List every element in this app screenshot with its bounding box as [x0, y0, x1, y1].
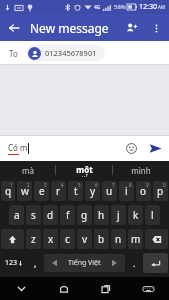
staticText: một — [76, 164, 93, 175]
staticText: f — [66, 208, 70, 222]
staticText: 0 — [163, 182, 166, 188]
button[interactable]: l — [145, 205, 160, 225]
button[interactable]: a — [9, 205, 24, 225]
button[interactable]: Add people — [119, 15, 145, 41]
button[interactable]: u — [102, 181, 117, 201]
button[interactable]: Hide keyboard — [0, 277, 43, 300]
button[interactable]: một — [56, 161, 112, 179]
button[interactable]: Back — [0, 14, 27, 41]
staticText: n — [115, 232, 122, 246]
staticText: l — [151, 208, 154, 222]
staticText: 58% — [114, 3, 126, 11]
staticText: x — [48, 232, 54, 246]
staticText: 5 — [78, 182, 81, 188]
button[interactable]: b — [94, 229, 109, 249]
staticText: 123 — [5, 258, 18, 268]
button[interactable]: . — [127, 251, 141, 275]
staticText: b — [98, 232, 105, 246]
button[interactable]: Recents — [85, 277, 127, 300]
button[interactable]: h — [94, 205, 109, 225]
staticText: , — [34, 257, 37, 269]
staticText: 1 — [10, 182, 13, 188]
button[interactable]: t — [68, 181, 83, 201]
staticText: 4 — [61, 182, 64, 188]
staticText: g — [81, 208, 88, 222]
button[interactable]: mà — [0, 161, 55, 179]
staticText: z — [31, 232, 36, 246]
button[interactable]: m — [128, 229, 143, 249]
staticText: mình — [131, 165, 151, 176]
staticText: AM — [158, 4, 165, 10]
button[interactable]: i — [119, 181, 134, 201]
staticText: w — [21, 184, 29, 198]
staticText: 3 — [44, 182, 47, 188]
button[interactable]: Tiếng Việt — [44, 254, 125, 272]
staticText: h — [98, 208, 105, 222]
button[interactable]: Home — [43, 277, 85, 300]
staticText: Tiếng Việt — [68, 258, 101, 268]
button[interactable]: j — [111, 205, 126, 225]
button[interactable]: n — [111, 229, 126, 249]
button[interactable]: z — [26, 229, 41, 249]
button[interactable]: Emoji — [122, 139, 140, 157]
button[interactable]: f — [60, 205, 75, 225]
button[interactable]: Backspace — [145, 229, 168, 249]
button[interactable]: s — [26, 205, 41, 225]
staticText: k — [133, 208, 139, 222]
staticText: a — [14, 208, 20, 222]
button[interactable]: e — [34, 181, 49, 201]
staticText: i — [125, 184, 128, 198]
staticText: 8 — [129, 182, 132, 188]
staticText: 012345678901 — [45, 48, 97, 58]
staticText: 12:30 — [139, 2, 157, 12]
staticText: v — [82, 232, 88, 246]
staticText: r — [56, 184, 61, 198]
staticText: To — [9, 48, 18, 59]
staticText: c — [65, 232, 70, 246]
button[interactable]: p — [153, 181, 168, 201]
button[interactable]: , — [28, 251, 42, 275]
button[interactable]: Switch keyboard — [127, 277, 169, 300]
staticText: 4G — [94, 4, 101, 11]
button[interactable]: x — [43, 229, 58, 249]
button[interactable]: mình — [113, 161, 169, 179]
staticText: 6 — [95, 182, 98, 188]
staticText: p — [157, 184, 164, 198]
button[interactable]: y — [85, 181, 100, 201]
button[interactable]: 012345678901 — [26, 45, 105, 61]
staticText: y — [90, 184, 96, 198]
staticText: 2 — [27, 182, 30, 188]
button[interactable]: w — [17, 181, 32, 201]
staticText: d — [47, 208, 54, 222]
button[interactable]: More options — [145, 17, 167, 39]
button[interactable]: o — [136, 181, 151, 201]
staticText: 9 — [146, 182, 149, 188]
staticText: o — [140, 184, 147, 198]
button[interactable]: Enter — [143, 253, 168, 273]
staticText: e — [39, 184, 45, 198]
button[interactable]: q — [1, 181, 15, 201]
button[interactable]: c — [60, 229, 75, 249]
staticText: 7 — [112, 182, 115, 188]
button[interactable]: k — [128, 205, 143, 225]
staticText: m — [131, 232, 141, 246]
staticText: s — [31, 208, 36, 222]
button[interactable]: v — [77, 229, 92, 249]
button[interactable]: Shift — [1, 229, 24, 249]
staticText: u — [106, 184, 113, 198]
button[interactable]: Send — [145, 138, 165, 158]
button[interactable]: d — [43, 205, 58, 225]
staticText: j — [117, 208, 120, 222]
staticText: t — [74, 184, 78, 198]
button[interactable]: g — [77, 205, 92, 225]
staticText: . — [133, 257, 136, 269]
staticText: mà — [22, 165, 34, 176]
staticText: q — [5, 184, 12, 198]
staticText: Có m — [8, 142, 28, 153]
staticText: New message — [30, 20, 109, 36]
button[interactable]: 123 — [1, 251, 26, 275]
button[interactable]: r — [51, 181, 66, 201]
